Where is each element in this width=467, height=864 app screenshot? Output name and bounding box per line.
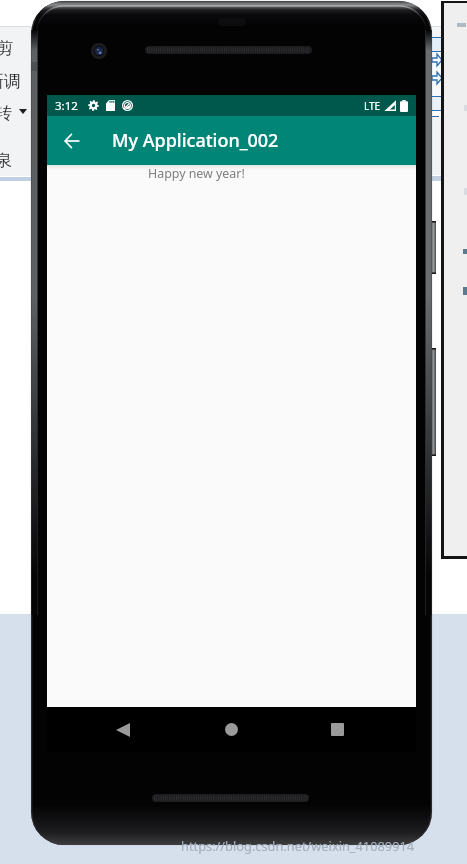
staticText: 剪	[0, 38, 13, 59]
staticText: Happy new year!	[148, 165, 245, 182]
button[interactable]: Home	[214, 712, 249, 747]
staticText: https://blog.csdn.net/weixin_41089914	[181, 837, 415, 854]
staticText: 转	[0, 103, 12, 124]
staticText: LTE	[364, 99, 381, 113]
staticText: 泉	[0, 150, 12, 171]
button[interactable]: Back	[105, 712, 140, 747]
button[interactable]: Recent apps	[320, 712, 355, 747]
staticText: 3:12	[55, 98, 78, 114]
staticText: My Application_002	[112, 128, 279, 153]
staticText: 新调	[0, 71, 21, 92]
button[interactable]: Navigate up	[47, 116, 96, 165]
